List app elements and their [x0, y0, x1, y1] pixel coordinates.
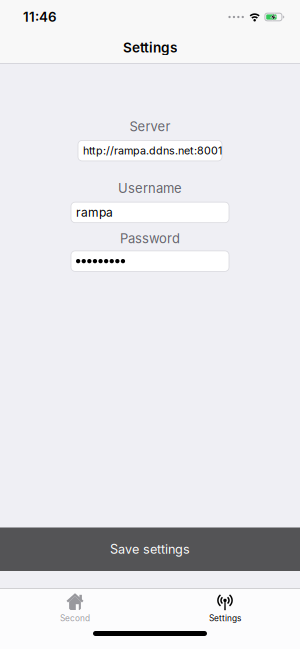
button[interactable]: Save settings	[0, 527, 300, 571]
staticText: Server	[129, 119, 170, 134]
staticText: Save settings	[110, 542, 190, 557]
staticText: Second	[60, 613, 90, 623]
staticText: http://rampa.ddns.net:8001	[83, 144, 222, 157]
button[interactable]: Second	[0, 589, 150, 623]
button[interactable]: Settings	[150, 589, 300, 623]
button[interactable]: Password secure text field	[71, 251, 229, 271]
staticText: Password	[120, 231, 180, 246]
button[interactable]: Server URL text field	[78, 140, 222, 161]
staticText: Username	[118, 180, 182, 196]
staticText: Settings	[209, 613, 241, 623]
staticText: rampa	[76, 205, 113, 220]
staticText: 11:46	[23, 9, 57, 25]
button[interactable]: Username text field	[71, 202, 229, 223]
staticText: Settings	[123, 39, 177, 56]
